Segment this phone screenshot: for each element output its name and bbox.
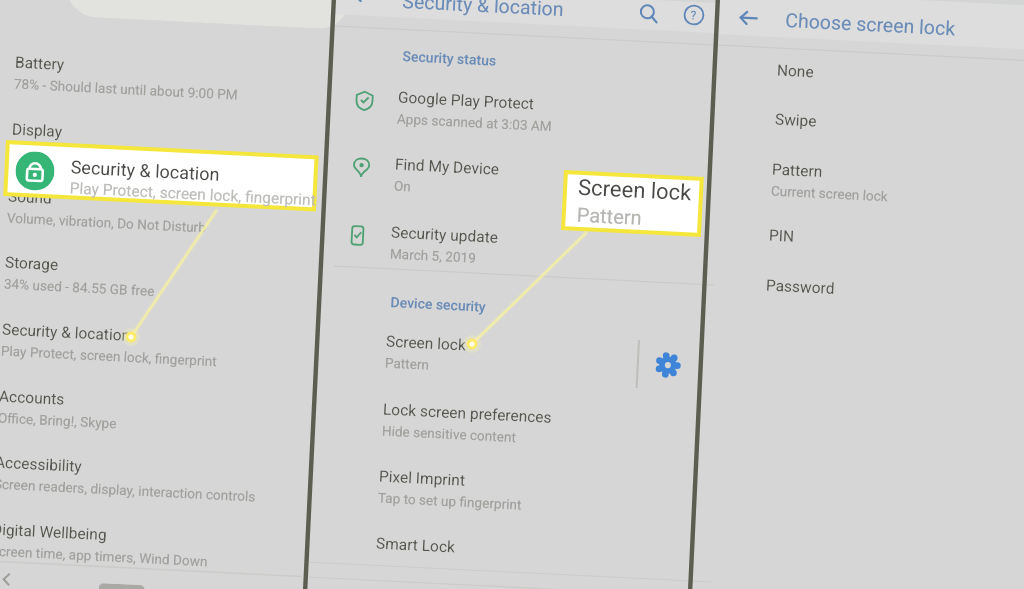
staticText: Tap to set up fingerprint xyxy=(378,489,522,513)
button[interactable]: Google Play Protect xyxy=(385,77,648,142)
button[interactable]: Security & location xyxy=(7,144,314,207)
staticText: Security update xyxy=(390,223,499,247)
button[interactable]: Screen lock xyxy=(565,174,700,233)
staticText: Device security xyxy=(390,294,487,315)
button[interactable]: None xyxy=(765,50,1007,96)
staticText: Volume, vibration, Do Not Disturb xyxy=(7,209,207,235)
staticText: Digital Wellbeing xyxy=(0,520,107,544)
staticText: None xyxy=(776,61,814,81)
button[interactable]: Battery xyxy=(2,42,335,110)
staticText: Screen readers, display, interaction con… xyxy=(0,475,256,504)
staticText: On xyxy=(394,177,411,194)
staticText: Pattern xyxy=(576,203,642,229)
button[interactable]: Accessibility xyxy=(0,442,315,510)
button[interactable]: Digital Wellbeing xyxy=(0,509,312,577)
staticText: 78% - Should last until about 9:00 PM xyxy=(14,75,238,103)
staticText: Security status xyxy=(402,48,497,69)
staticText: Pattern xyxy=(771,160,823,181)
staticText: Storage xyxy=(4,253,59,274)
button[interactable]: Security & location xyxy=(0,309,322,377)
staticText: Screen lock xyxy=(577,175,693,206)
staticText: 34% used - 84.55 GB free xyxy=(4,275,155,299)
button[interactable]: Home xyxy=(98,583,145,589)
button[interactable]: Accounts xyxy=(0,376,319,444)
button[interactable]: Back xyxy=(0,570,16,589)
staticText: Accessibility xyxy=(0,453,82,476)
staticText: Current screen lock xyxy=(771,182,888,204)
staticText: Brightness, sleep, font size xyxy=(11,142,173,166)
staticText: Security & location xyxy=(70,156,220,185)
staticText: Pattern xyxy=(385,354,430,373)
staticText: Lock screen preferences xyxy=(382,400,552,427)
button[interactable]: Back xyxy=(351,0,373,6)
button[interactable]: Sound xyxy=(0,176,328,244)
button[interactable]: Security update xyxy=(378,212,641,277)
button[interactable]: Screen lock xyxy=(373,321,636,386)
button[interactable]: Pixel Imprint xyxy=(366,456,629,521)
staticText: Pixel Imprint xyxy=(378,467,466,490)
staticText: Apps scanned at 3:03 AM xyxy=(397,110,552,134)
button[interactable]: Find My Device xyxy=(382,144,645,209)
staticText: Find My Device xyxy=(394,155,500,179)
staticText: Security & location xyxy=(1,320,131,345)
staticText: Swipe xyxy=(774,110,817,131)
button[interactable]: Lock screen preferences xyxy=(370,389,633,454)
button[interactable]: Password xyxy=(754,265,996,311)
staticText: PIN xyxy=(768,226,795,246)
staticText: Play Protect, screen lock, fingerprint xyxy=(69,179,317,209)
button[interactable]: PIN xyxy=(757,215,999,261)
staticText: Hide sensitive content xyxy=(382,422,517,445)
button[interactable]: Help xyxy=(683,4,705,26)
button[interactable]: Screen lock settings xyxy=(655,352,681,378)
staticText: Play Protect, screen lock, fingerprint xyxy=(1,342,218,369)
button[interactable]: Pattern xyxy=(759,149,1002,213)
staticText: Screen time, app timers, Wind Down xyxy=(0,542,208,569)
button[interactable]: Display xyxy=(0,109,332,177)
staticText: Smart Lock xyxy=(375,534,455,556)
button[interactable]: Swipe xyxy=(763,99,1005,145)
staticText: Password xyxy=(765,276,835,298)
staticText: March 5, 2019 xyxy=(390,245,476,266)
staticText: Google Play Protect xyxy=(397,88,535,113)
staticText: Choose screen lock xyxy=(785,9,956,40)
button[interactable]: Back xyxy=(737,7,759,29)
button[interactable]: Storage xyxy=(0,242,325,310)
staticText: Screen lock xyxy=(385,332,466,354)
staticText: ? xyxy=(690,8,697,23)
staticText: Security & location xyxy=(402,0,565,21)
button[interactable]: Search xyxy=(638,3,660,25)
staticText: Accounts xyxy=(0,387,65,409)
staticText: Display xyxy=(11,120,63,141)
button[interactable]: Smart Lock xyxy=(364,523,626,566)
staticText: Battery xyxy=(14,53,65,74)
button[interactable]: Search settings xyxy=(65,0,352,30)
staticText: Sound xyxy=(7,187,52,208)
staticText: Office, Bring!, Skype xyxy=(0,409,117,431)
